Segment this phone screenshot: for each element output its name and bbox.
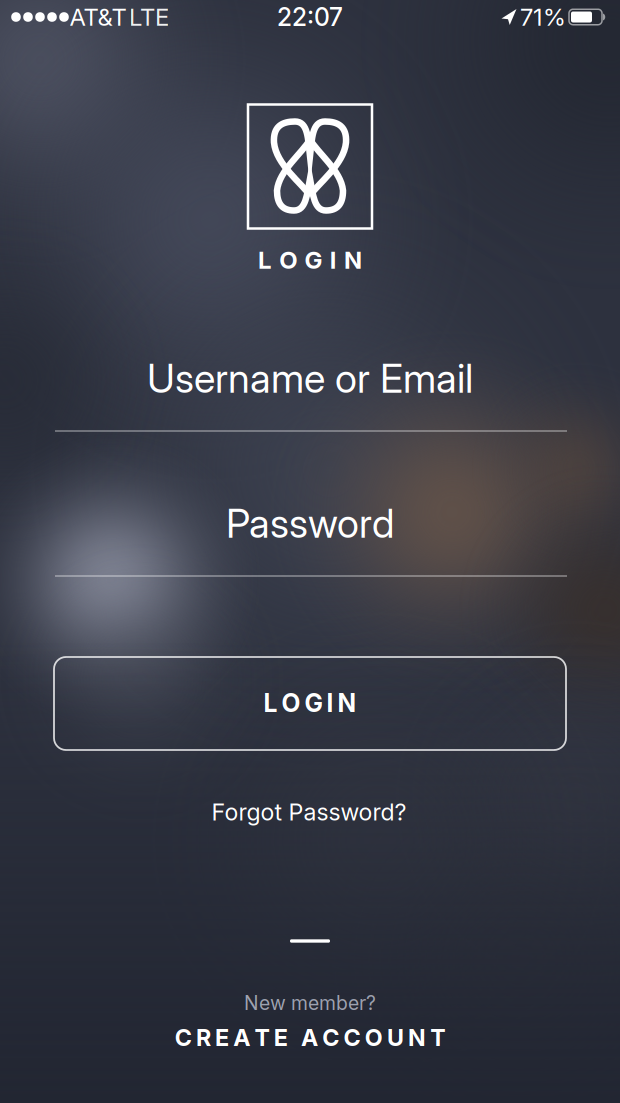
staticText: O	[279, 245, 297, 274]
staticText: I	[330, 245, 337, 274]
staticText: N	[408, 1023, 426, 1052]
staticText: 71%	[520, 2, 566, 31]
staticText: Username or Email	[147, 355, 473, 402]
staticText: Forgot Password?	[211, 798, 406, 826]
staticText: A	[301, 1023, 318, 1052]
staticText: T	[254, 1023, 269, 1052]
staticText: I	[326, 688, 333, 718]
staticText: C	[175, 1023, 192, 1052]
staticText: T	[430, 1023, 445, 1052]
staticText: O	[365, 1023, 383, 1052]
staticText: E	[274, 1023, 288, 1052]
staticText: C	[343, 1023, 360, 1052]
staticText: N	[344, 245, 362, 274]
staticText: U	[387, 1023, 404, 1052]
staticText: N	[337, 688, 356, 718]
button[interactable]: Username or Email	[55, 345, 567, 435]
staticText: Password	[226, 500, 394, 547]
staticText: R	[196, 1023, 211, 1052]
button[interactable]: L	[54, 657, 566, 750]
button[interactable]: Forgot Password?	[184, 790, 434, 834]
staticText: New member?	[244, 991, 376, 1015]
staticText: AT&T	[69, 2, 126, 31]
staticText: 22:07	[277, 2, 343, 32]
button[interactable]: C	[95, 1015, 525, 1059]
button[interactable]: Password	[55, 490, 567, 580]
staticText: O	[281, 688, 300, 718]
staticText: E	[215, 1023, 229, 1052]
staticText: G	[304, 688, 322, 718]
staticText: C	[322, 1023, 339, 1052]
staticText: LTE	[129, 2, 169, 31]
staticText: L	[263, 688, 277, 718]
staticText: G	[304, 245, 322, 274]
staticText: L	[258, 245, 272, 274]
staticText: A	[233, 1023, 250, 1052]
